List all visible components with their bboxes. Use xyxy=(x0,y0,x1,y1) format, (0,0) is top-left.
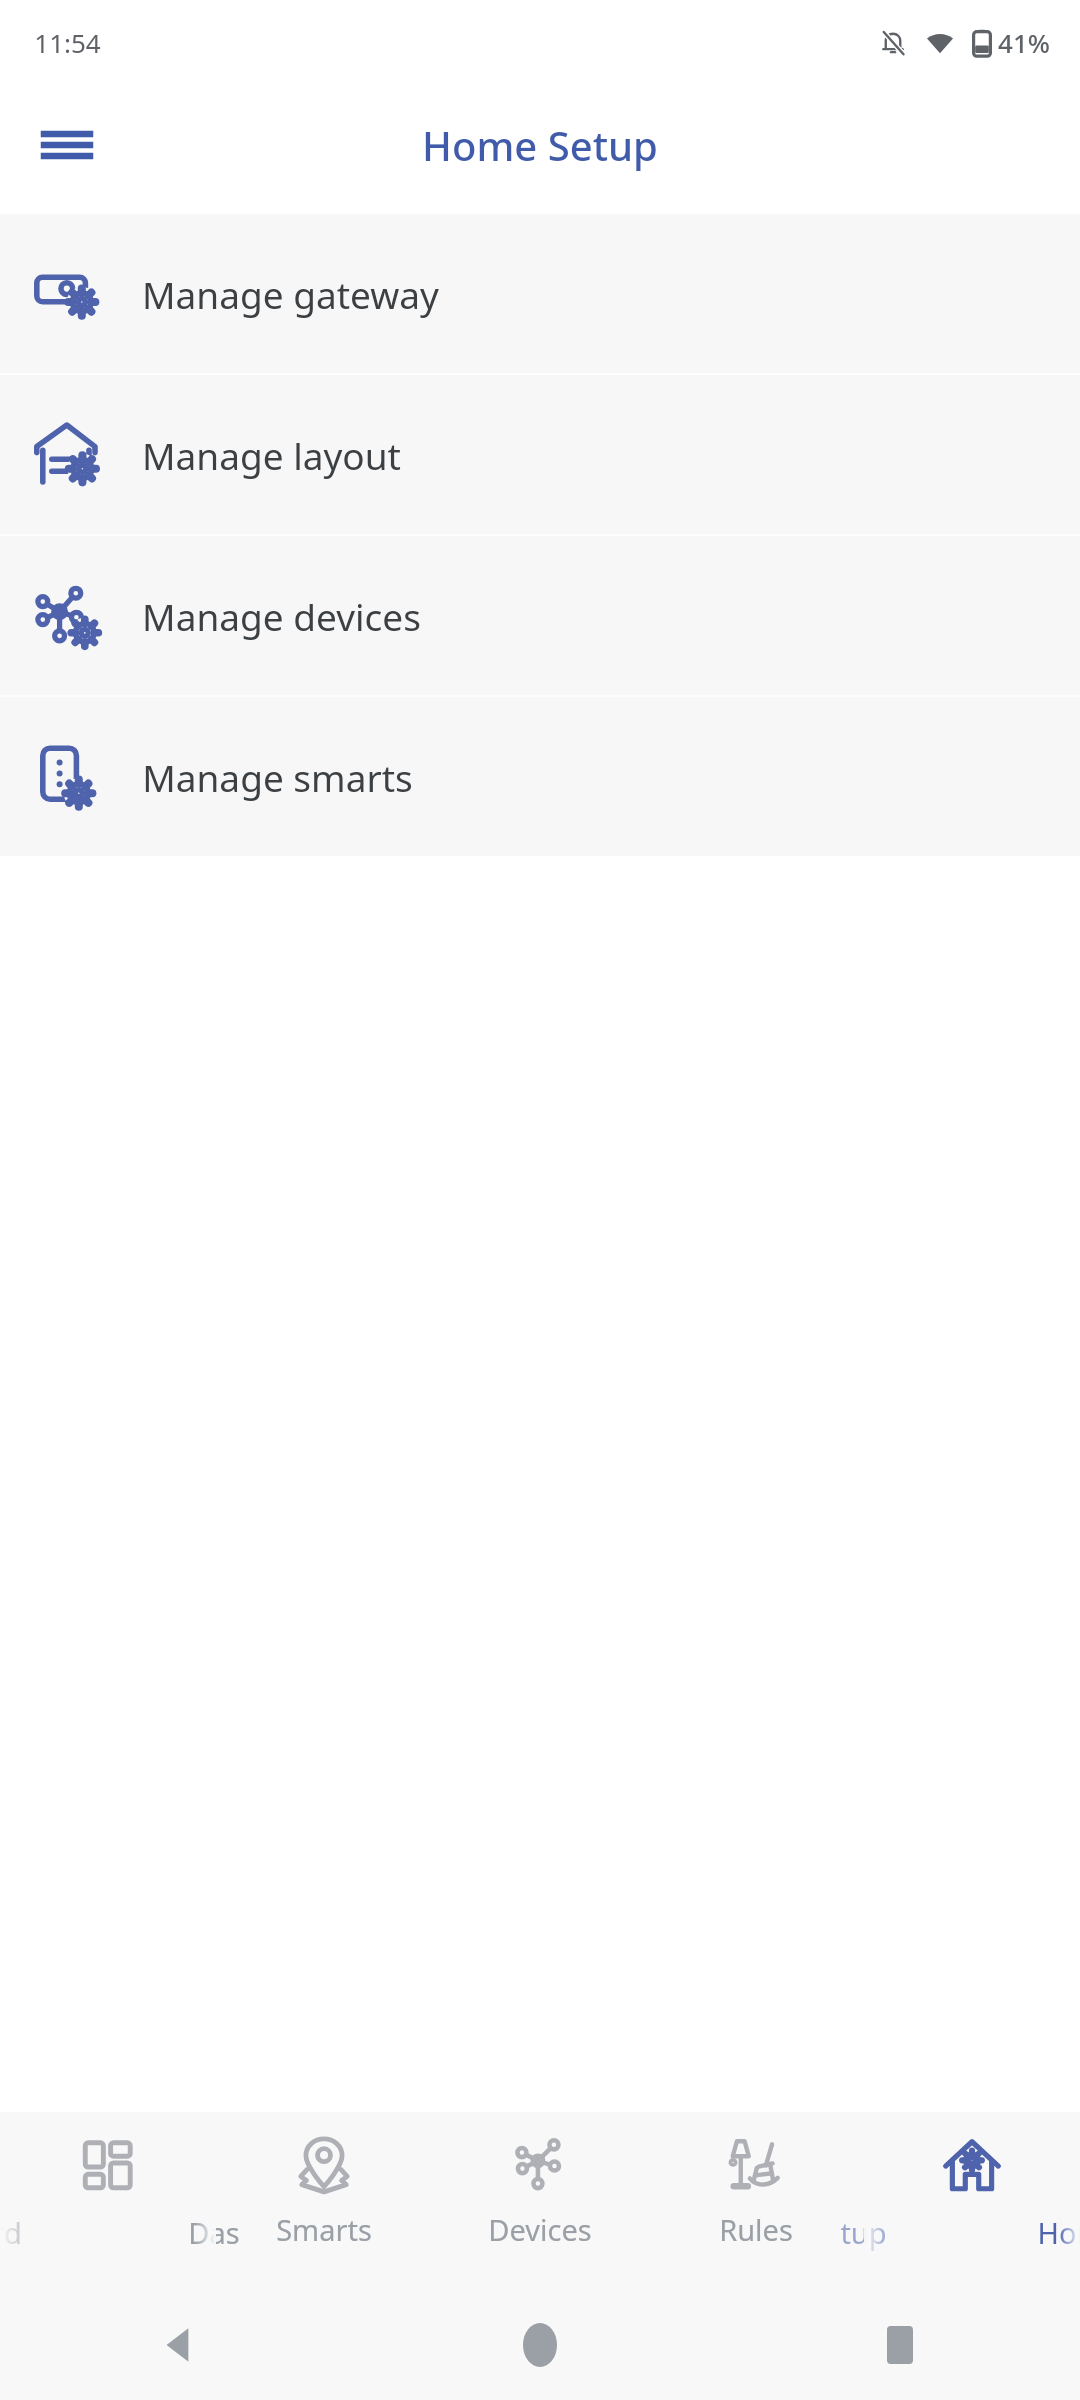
staticText: Manage layout xyxy=(142,430,401,480)
button[interactable]: Manage smarts xyxy=(0,697,1080,856)
staticText: 11:54 xyxy=(34,25,101,60)
staticText: Manage smarts xyxy=(142,752,413,802)
staticText: Manage gateway xyxy=(142,269,439,319)
staticText: 41% xyxy=(998,25,1050,60)
button[interactable]: Open navigation menu xyxy=(28,106,106,184)
button[interactable]: Recent apps xyxy=(720,2290,1080,2400)
staticText: Home Setup xyxy=(422,118,658,172)
staticText: Rules xyxy=(719,2210,793,2249)
staticText: Smarts xyxy=(276,2210,372,2249)
staticText: Devices xyxy=(488,2210,592,2249)
button[interactable]: Back xyxy=(0,2290,360,2400)
button[interactable]: ard xyxy=(0,2112,216,2290)
button[interactable]: Devices xyxy=(432,2112,648,2290)
staticText: Das xyxy=(188,2213,240,2252)
button[interactable]: Rules xyxy=(648,2112,864,2290)
button[interactable]: tup xyxy=(864,2112,1080,2290)
button[interactable]: Manage gateway xyxy=(0,214,1080,373)
staticText: Manage devices xyxy=(142,591,421,641)
staticText: Hom xyxy=(1037,2213,1080,2252)
button[interactable]: Smarts xyxy=(216,2112,432,2290)
staticText: tup xyxy=(840,2213,887,2252)
button[interactable]: Home xyxy=(360,2290,720,2400)
button[interactable]: Manage layout xyxy=(0,375,1080,534)
staticText: ard xyxy=(0,2213,22,2252)
button[interactable]: Manage devices xyxy=(0,536,1080,695)
